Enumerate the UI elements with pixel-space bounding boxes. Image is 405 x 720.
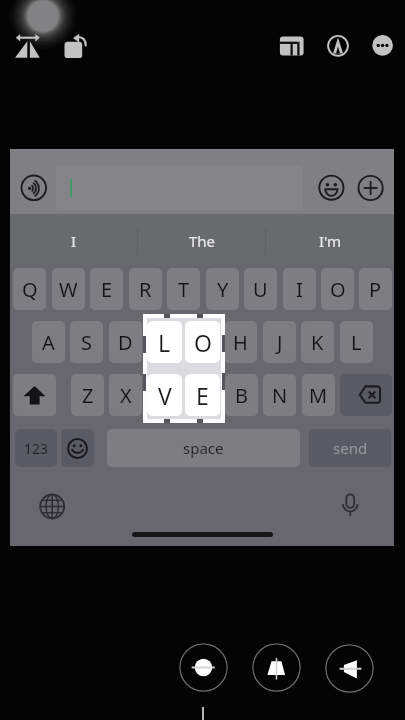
button[interactable]: Voice: [21, 175, 47, 201]
staticText: J: [277, 329, 283, 356]
staticText: Q: [22, 276, 38, 303]
button[interactable]: A: [32, 321, 65, 363]
button[interactable]: Change language: [39, 494, 65, 520]
staticText: I: [296, 276, 303, 303]
staticText: L: [158, 327, 171, 358]
staticText: T: [178, 276, 190, 303]
staticText: I: [71, 231, 77, 251]
button[interactable]: Add: [358, 175, 383, 200]
staticText: H: [233, 329, 248, 356]
staticText: E: [101, 276, 113, 303]
button[interactable]: P: [359, 268, 392, 310]
button[interactable]: Mirror: [15, 33, 41, 58]
button[interactable]: M: [302, 374, 335, 416]
staticText: send: [333, 438, 368, 458]
button[interactable]: V: [186, 374, 219, 416]
staticText: W: [59, 276, 78, 303]
button[interactable]: Pen: [326, 34, 350, 58]
button[interactable]: J: [263, 321, 296, 363]
staticText: O: [330, 276, 346, 303]
button[interactable]: 123: [15, 429, 57, 467]
button[interactable]: K: [301, 321, 334, 363]
button[interactable]: Emoji: [319, 175, 344, 200]
staticText: F: [158, 329, 169, 356]
button[interactable]: space: [107, 429, 300, 467]
staticText: D: [118, 329, 133, 356]
button[interactable]: O: [321, 268, 354, 310]
button[interactable]: send: [309, 429, 391, 467]
button[interactable]: U: [244, 268, 277, 310]
button[interactable]: Emoji keyboard: [61, 429, 94, 467]
button[interactable]: W: [52, 268, 85, 310]
button[interactable]: Layout: [279, 35, 305, 57]
staticText: L: [351, 329, 362, 356]
button[interactable]: I'm: [266, 216, 394, 266]
button[interactable]: I: [283, 268, 316, 310]
button[interactable]: Backspace: [340, 374, 392, 416]
staticText: B: [235, 382, 248, 409]
button[interactable]: More options: [371, 34, 394, 57]
button[interactable]: D: [109, 321, 142, 363]
staticText: V: [158, 380, 172, 411]
button[interactable]: Dictate: [337, 493, 363, 519]
staticText: 123: [24, 439, 49, 458]
staticText: N: [272, 382, 288, 409]
button[interactable]: I: [10, 216, 138, 266]
button[interactable]: N: [263, 374, 296, 416]
staticText: I'm: [319, 231, 342, 251]
button[interactable]: Shift: [13, 374, 56, 416]
staticText: G: [195, 329, 210, 356]
staticText: P: [369, 276, 382, 303]
staticText: R: [139, 276, 152, 303]
button[interactable]: X: [109, 374, 142, 416]
staticText: X: [120, 382, 132, 409]
button[interactable]: G: [186, 321, 219, 363]
staticText: Y: [217, 276, 229, 303]
button[interactable]: L: [147, 321, 182, 363]
button[interactable]: E: [185, 374, 220, 416]
staticText: The: [189, 231, 216, 251]
button[interactable]: The: [138, 216, 266, 266]
button[interactable]: B: [225, 374, 258, 416]
button[interactable]: O: [185, 321, 220, 363]
staticText: A: [42, 329, 55, 356]
staticText: E: [196, 380, 209, 411]
button[interactable]: R: [129, 268, 162, 310]
button[interactable]: H: [224, 321, 257, 363]
button[interactable]: Rotate: [64, 33, 88, 59]
button[interactable]: E: [90, 268, 123, 310]
staticText: space: [183, 438, 224, 458]
button[interactable]: Flip horizontal: [325, 644, 374, 693]
staticText: C: [158, 382, 171, 409]
button[interactable]: Capture: [10, 0, 76, 49]
button[interactable]: [56, 165, 303, 210]
staticText: M: [309, 382, 328, 409]
staticText: K: [311, 329, 324, 356]
button[interactable]: L: [340, 321, 373, 363]
button[interactable]: Flip vertical: [179, 643, 228, 692]
button[interactable]: Z: [71, 374, 104, 416]
button[interactable]: C: [148, 374, 181, 416]
staticText: O: [194, 327, 212, 358]
button[interactable]: S: [70, 321, 103, 363]
staticText: V: [197, 382, 209, 409]
staticText: U: [253, 276, 268, 303]
button[interactable]: Y: [206, 268, 239, 310]
button[interactable]: F: [147, 321, 180, 363]
staticText: Z: [82, 382, 94, 409]
button[interactable]: T: [167, 268, 200, 310]
button[interactable]: V: [147, 374, 182, 416]
staticText: S: [81, 329, 92, 356]
button[interactable]: Q: [13, 268, 46, 310]
button[interactable]: Mirror vertical: [252, 643, 301, 692]
